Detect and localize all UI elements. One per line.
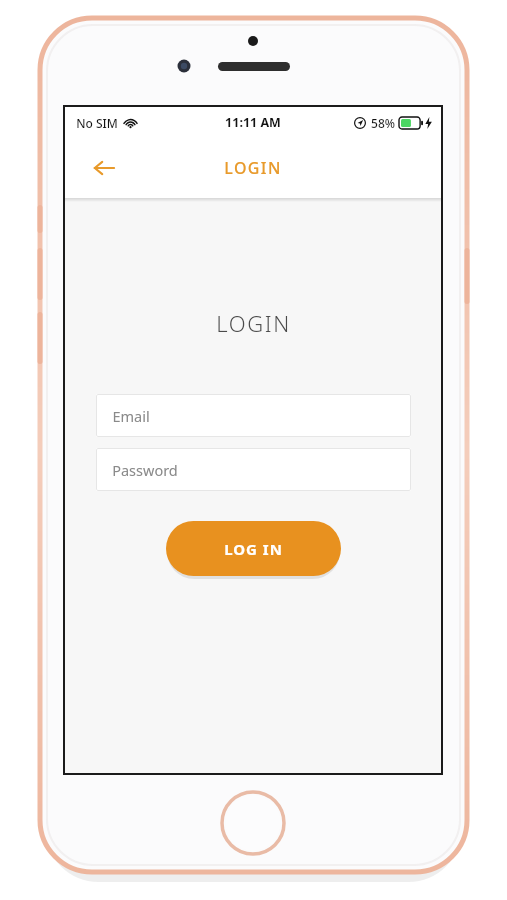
button[interactable]: Password bbox=[96, 448, 411, 491]
staticText: 58% bbox=[371, 115, 395, 131]
staticText: LOG IN bbox=[224, 539, 283, 559]
staticText: LOGIN bbox=[224, 157, 282, 179]
staticText: Password bbox=[112, 460, 178, 480]
staticText: 11:11 AM bbox=[225, 114, 281, 131]
button[interactable]: Back bbox=[87, 151, 121, 185]
staticText: LOGIN bbox=[216, 308, 291, 338]
button[interactable]: LOG IN bbox=[166, 521, 341, 576]
staticText: Email bbox=[112, 406, 150, 426]
staticText: No SIM bbox=[76, 115, 118, 131]
button[interactable]: Email bbox=[96, 394, 411, 437]
